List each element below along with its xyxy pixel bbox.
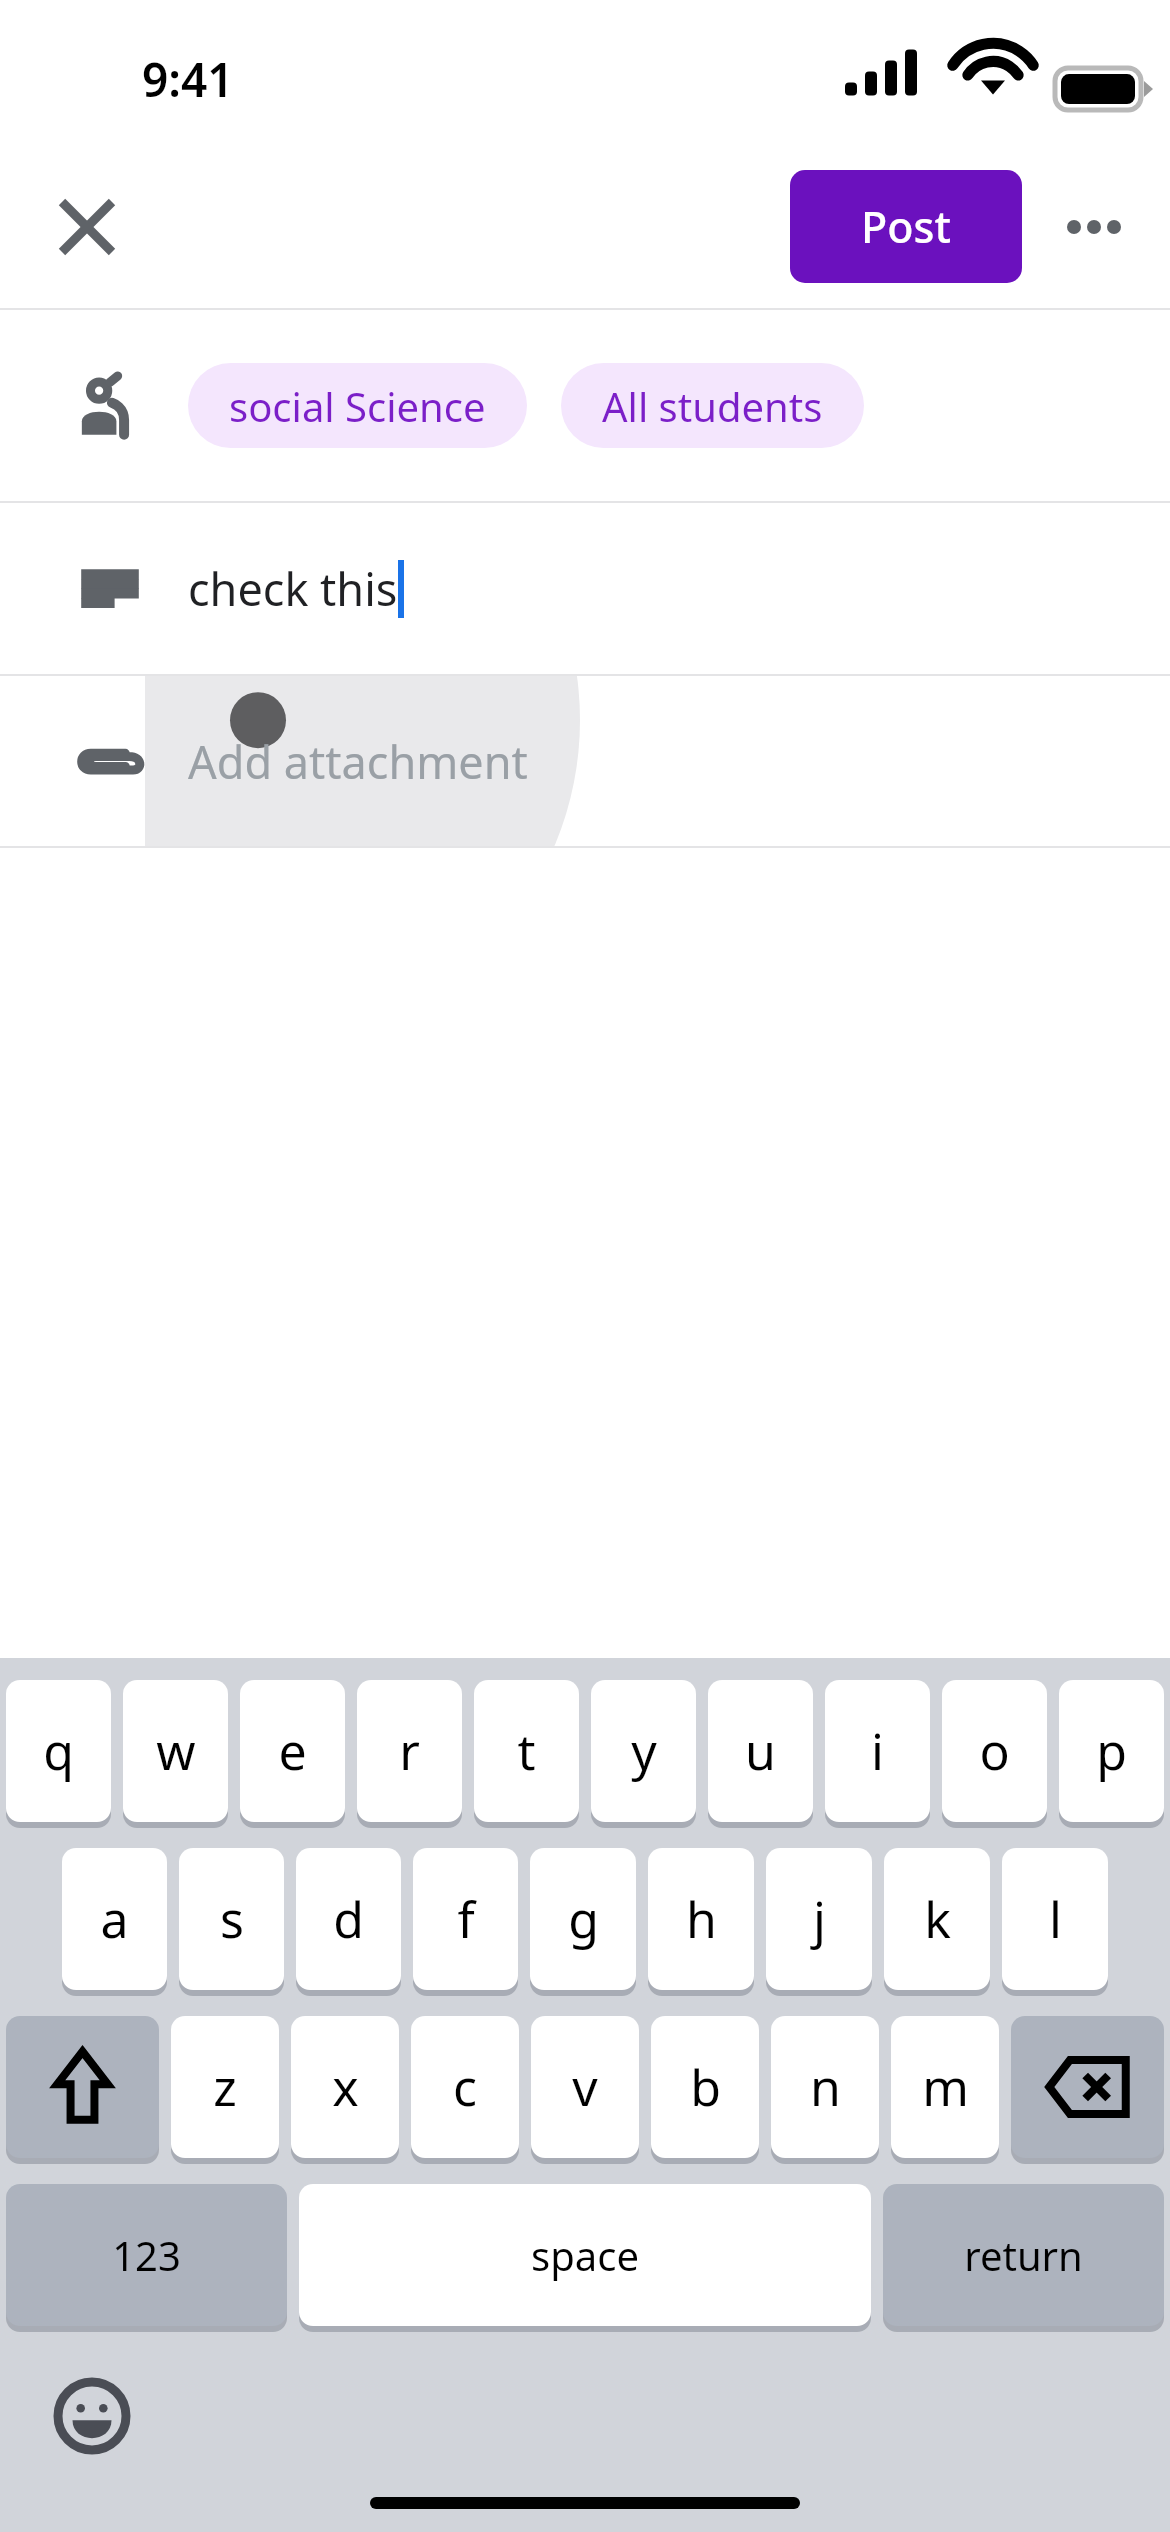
- button[interactable]: q: [6, 1680, 111, 1822]
- button[interactable]: c: [411, 2016, 519, 2158]
- staticText: check this: [188, 558, 398, 619]
- button[interactable]: b: [651, 2016, 759, 2158]
- button[interactable]: n: [771, 2016, 879, 2158]
- button[interactable]: h: [648, 1848, 754, 1990]
- staticText: f: [457, 1885, 475, 1953]
- button[interactable]: i: [825, 1680, 930, 1822]
- staticText: d: [333, 1885, 364, 1953]
- staticText: z: [213, 2053, 237, 2121]
- staticText: y: [631, 1717, 657, 1785]
- button[interactable]: l: [1002, 1848, 1108, 1990]
- button[interactable]: a: [62, 1848, 167, 1990]
- staticText: p: [1096, 1717, 1127, 1785]
- button[interactable]: Add attachment: [0, 676, 1170, 846]
- button[interactable]: More options: [1045, 178, 1143, 276]
- button[interactable]: v: [531, 2016, 639, 2158]
- staticText: k: [924, 1885, 951, 1953]
- button[interactable]: All students: [561, 363, 864, 448]
- button[interactable]: s: [179, 1848, 284, 1990]
- staticText: return: [964, 2228, 1083, 2282]
- button[interactable]: social Science: [188, 363, 527, 448]
- button[interactable]: Shift: [6, 2016, 159, 2158]
- button[interactable]: u: [708, 1680, 813, 1822]
- staticText: m: [922, 2053, 969, 2121]
- staticText: q: [43, 1717, 74, 1785]
- staticText: h: [686, 1885, 717, 1953]
- button[interactable]: y: [591, 1680, 696, 1822]
- staticText: 9:41: [142, 48, 234, 111]
- staticText: Add attachment: [188, 731, 528, 792]
- button[interactable]: k: [884, 1848, 990, 1990]
- staticText: space: [531, 2228, 639, 2282]
- staticText: u: [745, 1717, 776, 1785]
- button[interactable]: d: [296, 1848, 401, 1990]
- button[interactable]: z: [171, 2016, 279, 2158]
- button[interactable]: p: [1059, 1680, 1164, 1822]
- button[interactable]: return: [883, 2184, 1164, 2326]
- staticText: e: [278, 1717, 307, 1785]
- staticText: j: [813, 1885, 826, 1953]
- button[interactable]: f: [413, 1848, 518, 1990]
- staticText: v: [572, 2053, 598, 2121]
- staticText: n: [810, 2053, 841, 2121]
- staticText: c: [453, 2053, 477, 2121]
- button[interactable]: j: [766, 1848, 872, 1990]
- button[interactable]: o: [942, 1680, 1047, 1822]
- button[interactable]: m: [891, 2016, 999, 2158]
- staticText: r: [399, 1717, 420, 1785]
- staticText: i: [871, 1717, 884, 1785]
- button[interactable]: x: [291, 2016, 399, 2158]
- staticText: s: [220, 1885, 244, 1953]
- staticText: 123: [112, 2228, 181, 2282]
- staticText: Post: [861, 197, 951, 256]
- staticText: social Science: [229, 379, 486, 433]
- button[interactable]: Post: [790, 170, 1022, 283]
- button[interactable]: space: [299, 2184, 871, 2326]
- button[interactable]: Emoji keyboard: [44, 2368, 140, 2464]
- button[interactable]: r: [357, 1680, 462, 1822]
- button[interactable]: check this: [0, 503, 1170, 674]
- button[interactable]: t: [474, 1680, 579, 1822]
- button[interactable]: Close: [38, 178, 136, 276]
- button[interactable]: e: [240, 1680, 345, 1822]
- button[interactable]: g: [530, 1848, 636, 1990]
- button[interactable]: w: [123, 1680, 228, 1822]
- button[interactable]: social Science: [0, 310, 1170, 501]
- staticText: x: [332, 2053, 359, 2121]
- staticText: b: [690, 2053, 721, 2121]
- staticText: l: [1049, 1885, 1062, 1953]
- button[interactable]: Backspace: [1011, 2016, 1164, 2158]
- staticText: g: [568, 1885, 599, 1953]
- button[interactable]: 123: [6, 2184, 287, 2326]
- staticText: o: [979, 1717, 1010, 1785]
- staticText: a: [100, 1885, 129, 1953]
- staticText: t: [517, 1717, 536, 1785]
- staticText: w: [156, 1717, 196, 1785]
- staticText: All students: [602, 379, 823, 433]
